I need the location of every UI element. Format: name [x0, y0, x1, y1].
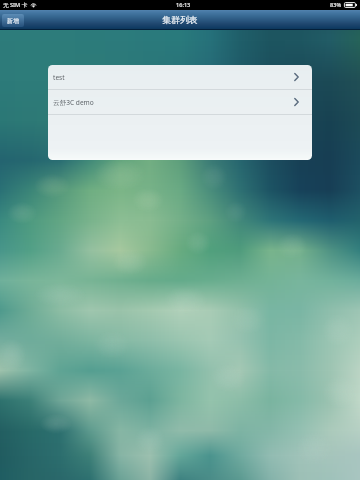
staticText: 新增 [7, 17, 19, 24]
staticText: 无 SIM 卡 [3, 1, 28, 9]
button[interactable]: 云舒3C demo [48, 90, 312, 114]
staticText: 16:13 [176, 1, 191, 9]
staticText: 83% [330, 1, 342, 9]
staticText: test [53, 73, 65, 82]
staticText: 云舒3C demo [53, 98, 94, 107]
staticText: 集群列表 [162, 15, 198, 26]
button[interactable]: 新增 [2, 14, 24, 27]
button[interactable]: test [48, 65, 312, 89]
